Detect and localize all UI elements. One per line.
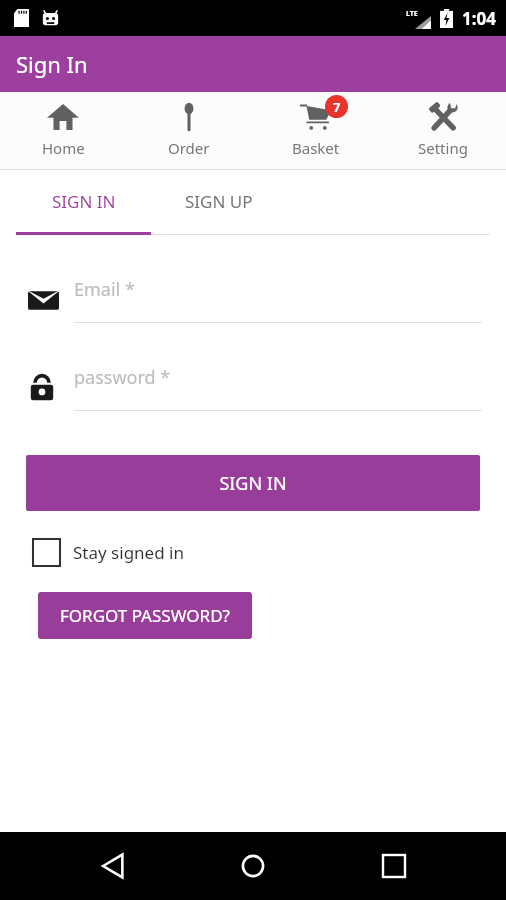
button[interactable]: Stay signed in bbox=[33, 539, 184, 566]
button[interactable]: SIGN IN bbox=[16, 170, 151, 232]
staticText: Order bbox=[168, 138, 210, 158]
button[interactable]: Home bbox=[225, 838, 281, 894]
staticText: Home bbox=[42, 138, 85, 158]
button[interactable]: Recent apps bbox=[366, 838, 422, 894]
button[interactable]: Order bbox=[126, 92, 252, 169]
button[interactable]: 7 bbox=[252, 92, 379, 169]
button[interactable]: Setting bbox=[379, 92, 506, 169]
staticText: SIGN IN bbox=[219, 471, 287, 496]
button[interactable]: FORGOT PASSWORD? bbox=[38, 592, 252, 639]
staticText: password * bbox=[74, 365, 171, 390]
staticText: SIGN IN bbox=[52, 190, 116, 213]
staticText: Setting bbox=[418, 138, 468, 158]
staticText: Stay signed in bbox=[73, 541, 184, 564]
staticText: 1:04 bbox=[462, 7, 496, 30]
button[interactable]: SIGN IN bbox=[26, 455, 480, 511]
button[interactable]: SIGN UP bbox=[151, 170, 286, 232]
staticText: Email * bbox=[74, 277, 135, 302]
button[interactable]: Home bbox=[0, 92, 126, 169]
staticText: FORGOT PASSWORD? bbox=[60, 604, 230, 627]
staticText: Basket bbox=[292, 138, 340, 158]
staticText: LTE bbox=[406, 9, 418, 19]
staticText: 7 bbox=[333, 98, 341, 116]
button[interactable]: Back bbox=[85, 838, 141, 894]
staticText: SIGN UP bbox=[185, 190, 253, 213]
staticText: Sign In bbox=[16, 49, 88, 79]
